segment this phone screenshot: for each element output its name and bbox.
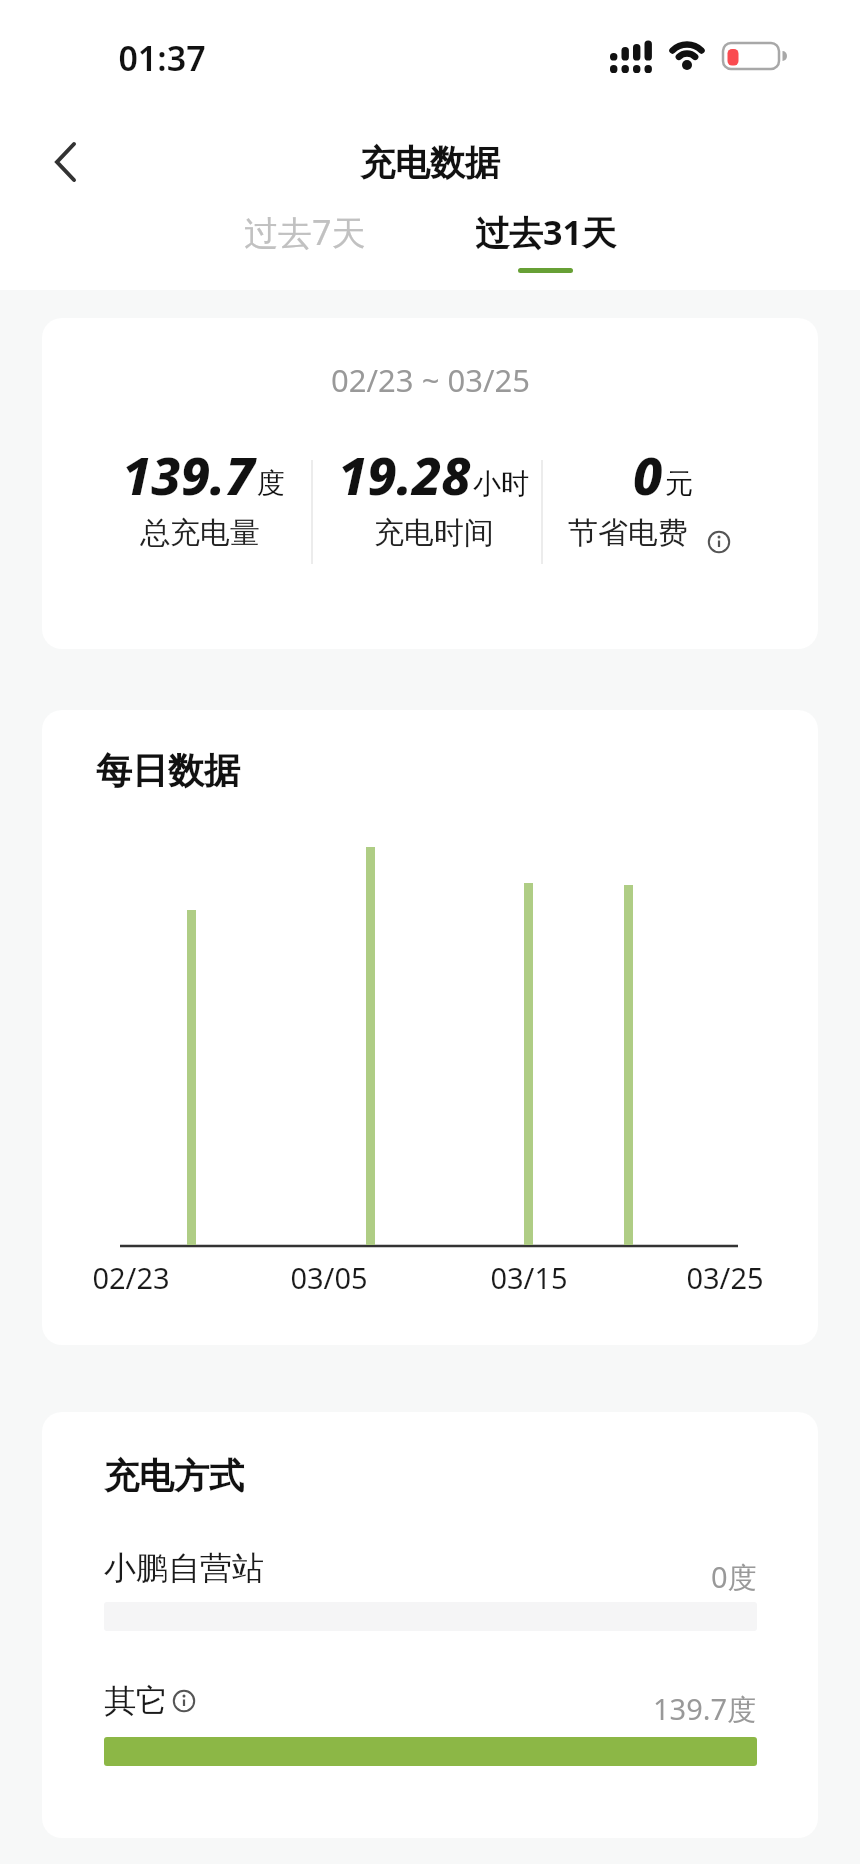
staticText: 139.7度 [653,1689,757,1729]
staticText: 充电方式 [104,1454,244,1498]
staticText: 其它 [104,1681,168,1721]
staticText: 过去7天 [244,209,366,255]
staticText: 总充电量 [140,514,260,552]
staticText: 小时 [473,466,529,501]
button[interactable] [40,136,92,188]
staticText: 小鹏自营站 [104,1548,264,1588]
staticText: 充电时间 [374,514,494,552]
button[interactable] [168,1685,200,1717]
staticText: 0度 [711,1557,757,1597]
button[interactable]: 过去31天 [445,204,645,260]
button[interactable] [703,526,735,558]
staticText: 02/23 ~ 03/25 [331,359,530,401]
staticText: 充电数据 [360,141,500,185]
staticText: 每日数据 [96,748,240,793]
staticText: 19.28 [338,439,471,510]
staticText: 03/25 [686,1258,764,1297]
staticText: 过去31天 [475,209,616,255]
button[interactable]: 过去7天 [205,204,405,260]
staticText: 0 [633,439,663,510]
staticText: 元 [665,466,693,501]
staticText: 度 [257,466,285,501]
staticText: 节省电费 [568,514,688,552]
staticText: 01:37 [118,35,206,81]
staticText: 03/05 [290,1258,368,1297]
staticText: 02/23 [92,1258,170,1297]
staticText: 03/15 [490,1258,568,1297]
staticText: 139.7 [122,439,255,510]
